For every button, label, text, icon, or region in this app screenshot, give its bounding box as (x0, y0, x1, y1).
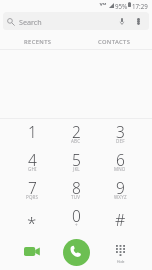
staticText: # (115, 209, 126, 231)
staticText: MNO (114, 166, 126, 172)
staticText: + (75, 222, 78, 228)
staticText: 6 (116, 149, 125, 170)
staticText: GHI (28, 166, 37, 172)
button[interactable]: Hide keypad (98, 233, 142, 270)
button[interactable]: Search (3, 12, 149, 30)
staticText: 4 (28, 149, 37, 170)
staticText: 3 (116, 121, 125, 142)
button[interactable]: 9 (98, 175, 142, 203)
button[interactable]: 8 (54, 175, 98, 203)
staticText: Search (19, 17, 42, 27)
button[interactable]: Video call (10, 233, 54, 270)
staticText: RECENTS (24, 38, 52, 46)
staticText: JKL (73, 166, 80, 172)
staticText: 5 (72, 149, 81, 170)
button[interactable]: 4 (10, 147, 54, 175)
button[interactable]: Voice search (115, 14, 129, 28)
button[interactable]: * (10, 203, 54, 231)
staticText: PQRS (26, 194, 39, 200)
staticText: * (27, 211, 37, 234)
staticText: Hide (117, 259, 125, 264)
staticText: 0 (72, 205, 81, 226)
button[interactable]: 0 (54, 203, 98, 231)
button[interactable]: 2 (54, 119, 98, 147)
button[interactable]: 3 (98, 119, 142, 147)
staticText: ABC (71, 138, 81, 144)
button[interactable]: More options (131, 14, 145, 28)
staticText: 8 (72, 177, 81, 198)
button[interactable]: 5 (54, 147, 98, 175)
staticText: 9 (116, 177, 125, 198)
button[interactable]: 1 (10, 119, 54, 147)
button[interactable]: CONTACTS (76, 30, 152, 49)
staticText: CONTACTS (98, 38, 131, 46)
button[interactable]: 6 (98, 147, 142, 175)
staticText: WXYZ (114, 194, 127, 200)
staticText: 1 (28, 121, 37, 142)
button[interactable]: 7 (10, 175, 54, 203)
staticText: 95% (115, 2, 128, 10)
button[interactable]: Call (54, 233, 98, 270)
staticText: TUV (71, 194, 81, 200)
staticText: 7 (28, 177, 37, 198)
staticText: DEF (116, 138, 125, 144)
button[interactable]: RECENTS (0, 30, 76, 49)
button[interactable]: # (98, 203, 142, 231)
staticText: 2 (72, 121, 81, 142)
staticText: 17:29 (132, 2, 148, 10)
